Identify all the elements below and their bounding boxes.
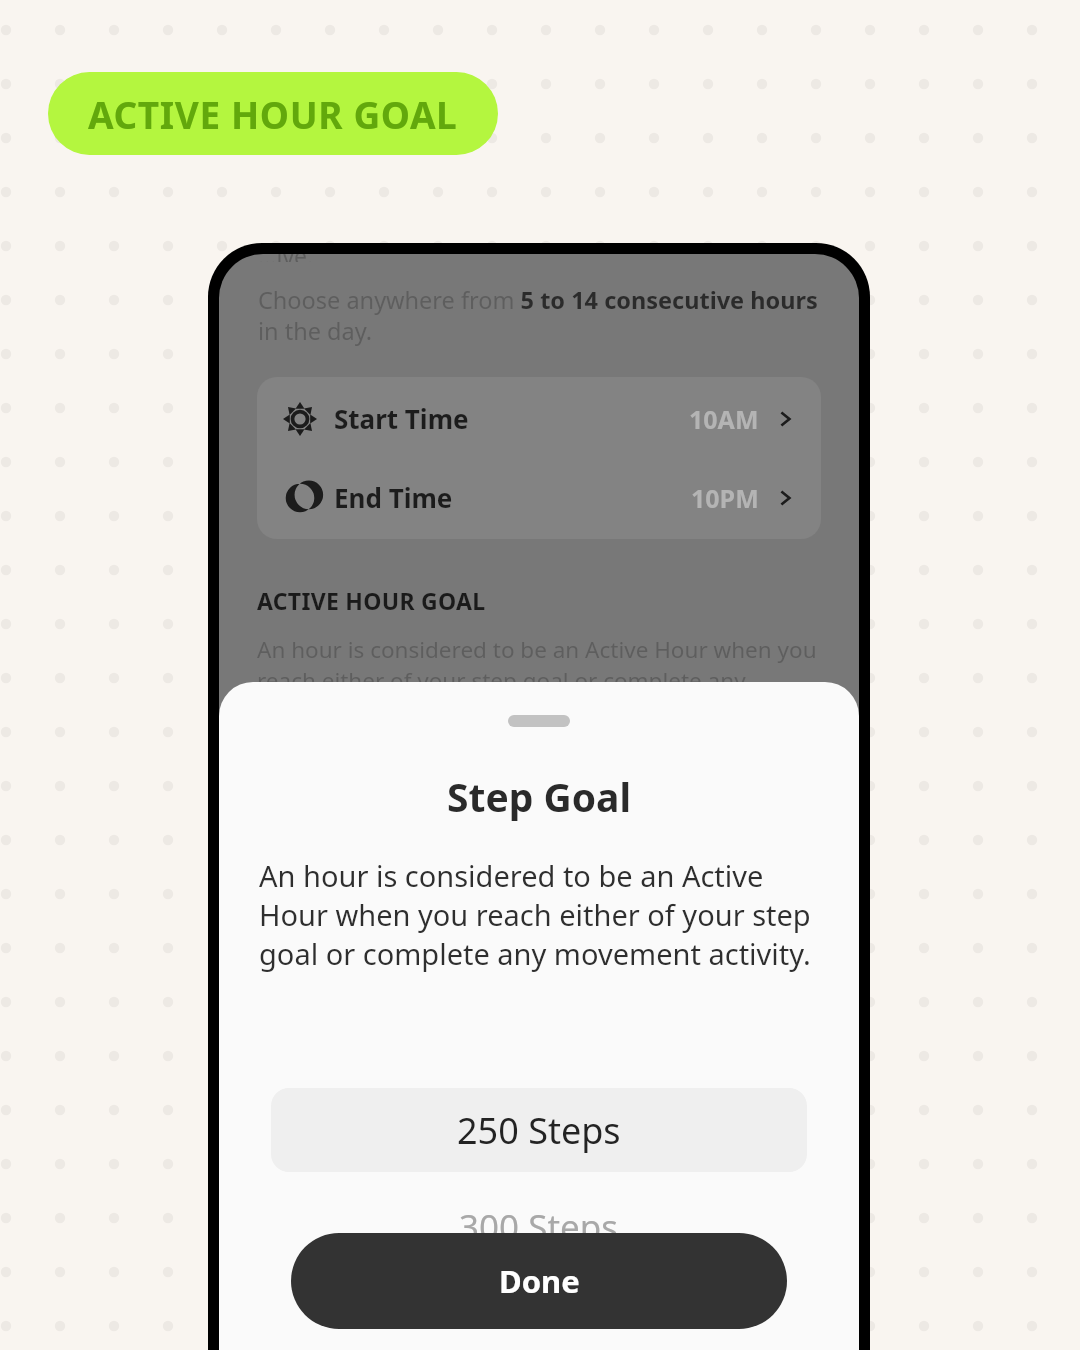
staticText: 250 Steps	[457, 1106, 621, 1155]
staticText: ACTIVE HOUR GOAL	[257, 585, 486, 616]
button[interactable]: 250 Steps	[271, 1088, 807, 1172]
staticText: End Time	[334, 480, 453, 515]
button[interactable]: 300 Steps	[219, 1203, 859, 1251]
staticText: Start Time	[334, 401, 469, 436]
other: Sunrise	[283, 402, 317, 436]
staticText: Choose anywhere from 5 to 14 consecutive…	[258, 284, 829, 346]
staticText: ...ive.	[258, 254, 314, 262]
button[interactable]: Sunrise	[257, 393, 821, 444]
button[interactable]: Done	[291, 1233, 787, 1329]
staticText: ACTIVE HOUR GOAL	[88, 89, 458, 139]
other: Moon	[283, 481, 317, 515]
button[interactable]: Moon	[257, 472, 821, 523]
staticText: An hour is considered to be an Active Ho…	[259, 856, 819, 973]
staticText: Step Goal	[447, 770, 632, 823]
staticText: 10AM	[689, 402, 759, 436]
button[interactable]: ACTIVE HOUR GOAL	[48, 72, 498, 155]
staticText: 300 Steps	[459, 1203, 619, 1251]
staticText: 10PM	[691, 481, 759, 515]
staticText: An hour is considered to be an Active Ho…	[257, 634, 829, 725]
button[interactable]: 350 Steps	[219, 1273, 859, 1318]
staticText: Done	[499, 1260, 580, 1302]
staticText: 350 Steps	[464, 1273, 614, 1318]
